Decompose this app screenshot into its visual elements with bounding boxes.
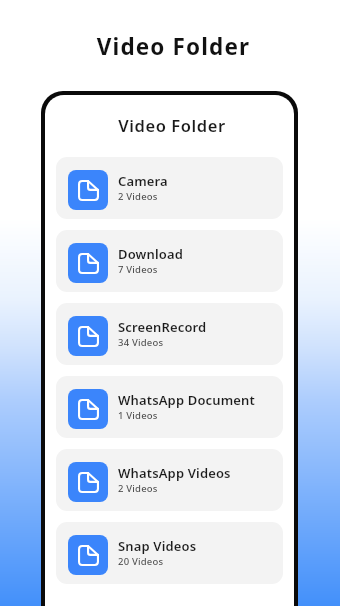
button[interactable]: Folder icon [56,522,283,584]
staticText: 2 Videos [118,482,158,495]
staticText: 2 Videos [118,190,158,203]
button[interactable]: Folder icon [56,303,283,365]
staticText: Video Folder [7,31,340,62]
button[interactable]: Folder icon [56,230,283,292]
other: Folder icon [68,389,108,429]
button[interactable]: Video Folder [45,114,294,136]
staticText: ScreenRecord [118,318,207,336]
staticText: 20 Videos [118,555,164,568]
button[interactable]: Folder icon [56,449,283,511]
other: Folder icon [68,170,108,210]
staticText: 1 Videos [118,409,158,422]
staticText: Download [118,245,184,263]
staticText: Video Folder [50,114,294,136]
staticText: 34 Videos [118,336,164,349]
other: Folder icon [68,316,108,356]
staticText: WhatsApp Document [118,391,255,409]
staticText: Snap Videos [118,537,197,555]
staticText: 7 Videos [118,263,158,276]
button[interactable]: Folder icon [56,157,283,219]
other: Folder icon [68,243,108,283]
staticText: Camera [118,172,168,190]
staticText: WhatsApp Videos [118,464,231,482]
button[interactable]: Folder icon [56,376,283,438]
other: Folder icon [68,535,108,575]
other: Folder icon [68,462,108,502]
